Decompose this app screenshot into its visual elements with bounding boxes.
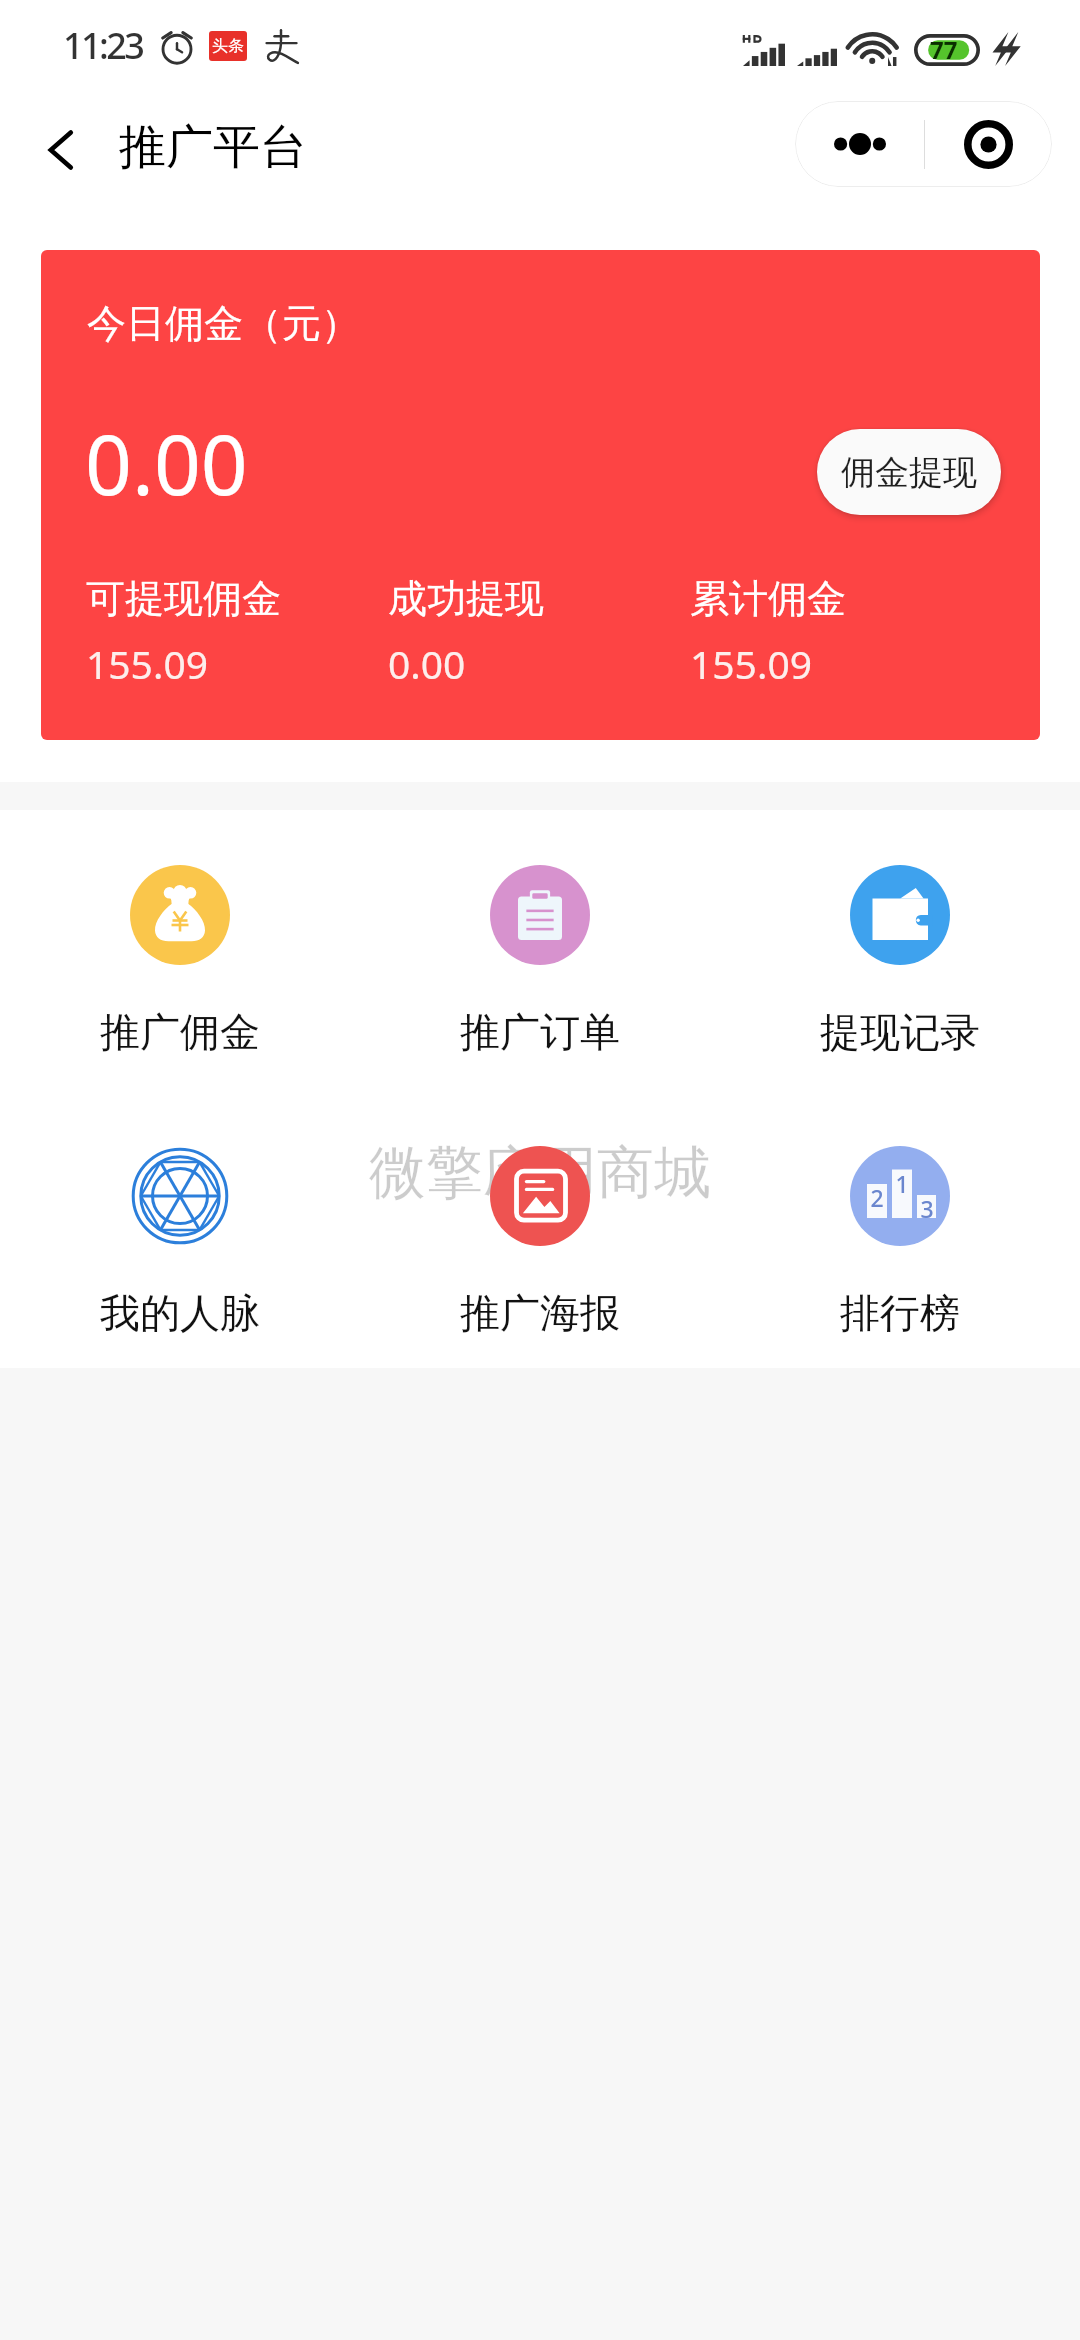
staticText: 排行榜 <box>840 1288 960 1338</box>
button[interactable]: 提现记录 <box>720 865 1080 1057</box>
staticText: 微擎应用商城 <box>369 1137 711 1209</box>
staticText: 可提现佣金 <box>86 574 281 623</box>
staticText: 0.00 <box>85 407 248 519</box>
button[interactable]: 佣金提现 <box>817 429 1001 515</box>
button[interactable]: 推广订单 <box>360 865 720 1057</box>
staticText: 155.09 <box>690 637 812 690</box>
staticText: 提现记录 <box>820 1007 980 1057</box>
staticText: 155.09 <box>86 637 208 690</box>
button[interactable]: 2 <box>720 1146 1080 1338</box>
button[interactable]: More options <box>795 101 924 187</box>
button[interactable]: 推广海报 <box>360 1146 720 1338</box>
staticText: 3 <box>920 1193 934 1224</box>
button[interactable]: Close mini program <box>925 101 1052 187</box>
staticText: 我的人脉 <box>100 1288 260 1338</box>
staticText: 成功提现 <box>388 574 544 623</box>
staticText: 头条 <box>212 36 244 56</box>
staticText: 今日佣金（元） <box>87 299 360 348</box>
staticText: 推广佣金 <box>100 1007 260 1057</box>
staticText: 累计佣金 <box>690 574 846 623</box>
staticText: 推广海报 <box>460 1288 620 1338</box>
button[interactable]: 推广佣金 <box>0 865 360 1057</box>
staticText: 推广订单 <box>460 1007 620 1057</box>
button[interactable]: 我的人脉 <box>0 1146 360 1338</box>
staticText: 0.00 <box>388 637 466 690</box>
button[interactable]: Back <box>26 114 98 186</box>
staticText: 2 <box>870 1182 884 1213</box>
staticText: 推广平台 <box>119 118 307 177</box>
staticText: 1 <box>895 1168 909 1199</box>
staticText: 佣金提现 <box>841 451 977 494</box>
staticText: 11:23 <box>63 21 143 70</box>
staticText: 77 <box>930 33 958 65</box>
